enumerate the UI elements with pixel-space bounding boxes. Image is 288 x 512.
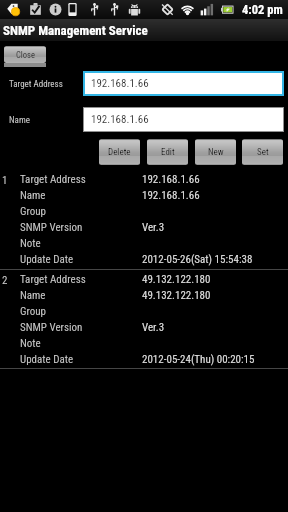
staticText: Delete bbox=[108, 147, 131, 158]
staticText: Ver.3 bbox=[142, 221, 165, 234]
staticText: 192.168.1.66 bbox=[142, 173, 200, 186]
staticText: Target Address bbox=[20, 273, 86, 286]
staticText: 2012-05-26(Sat) 15:54:38 bbox=[142, 253, 253, 266]
button[interactable]: 1 bbox=[0, 170, 288, 269]
staticText: Target Address bbox=[20, 173, 86, 186]
button[interactable]: 192.168.1.66 bbox=[85, 73, 282, 94]
staticText: Set bbox=[257, 147, 269, 158]
staticText: Name bbox=[20, 289, 46, 302]
staticText: 192.168.1.66 bbox=[142, 189, 200, 202]
staticText: 192.168.1.66 bbox=[91, 77, 149, 90]
button[interactable]: New bbox=[195, 139, 236, 165]
staticText: Close bbox=[16, 50, 35, 60]
button[interactable]: Set bbox=[242, 139, 283, 165]
staticText: SNMP Version bbox=[20, 221, 83, 234]
button[interactable]: Close bbox=[4, 46, 46, 63]
staticText: Group bbox=[20, 305, 47, 318]
staticText: 4:02 pm bbox=[242, 2, 283, 17]
button[interactable]: Delete bbox=[99, 139, 140, 165]
button[interactable]: 192.168.1.66 bbox=[84, 108, 283, 131]
staticText: Name bbox=[20, 189, 46, 202]
staticText: SNMP Management Service bbox=[3, 23, 148, 38]
button[interactable]: Edit bbox=[147, 139, 188, 165]
staticText: 2012-05-24(Thu) 00:20:15 bbox=[142, 353, 255, 366]
staticText: Target Address bbox=[9, 79, 63, 90]
staticText: New bbox=[208, 147, 224, 158]
staticText: 49.132.122.180 bbox=[142, 289, 211, 302]
staticText: 192.168.1.66 bbox=[91, 113, 149, 126]
staticText: 1 bbox=[2, 174, 8, 187]
button[interactable]: 2 bbox=[0, 270, 288, 369]
staticText: Name bbox=[9, 115, 30, 126]
staticText: Note bbox=[20, 237, 41, 250]
staticText: Edit bbox=[161, 147, 175, 158]
staticText: Note bbox=[20, 337, 41, 350]
staticText: Update Date bbox=[20, 353, 74, 366]
staticText: 49.132.122.180 bbox=[142, 273, 211, 286]
staticText: Ver.3 bbox=[142, 321, 165, 334]
staticText: SNMP Version bbox=[20, 321, 83, 334]
staticText: Update Date bbox=[20, 253, 74, 266]
staticText: Group bbox=[20, 205, 47, 218]
staticText: 2 bbox=[2, 274, 8, 287]
